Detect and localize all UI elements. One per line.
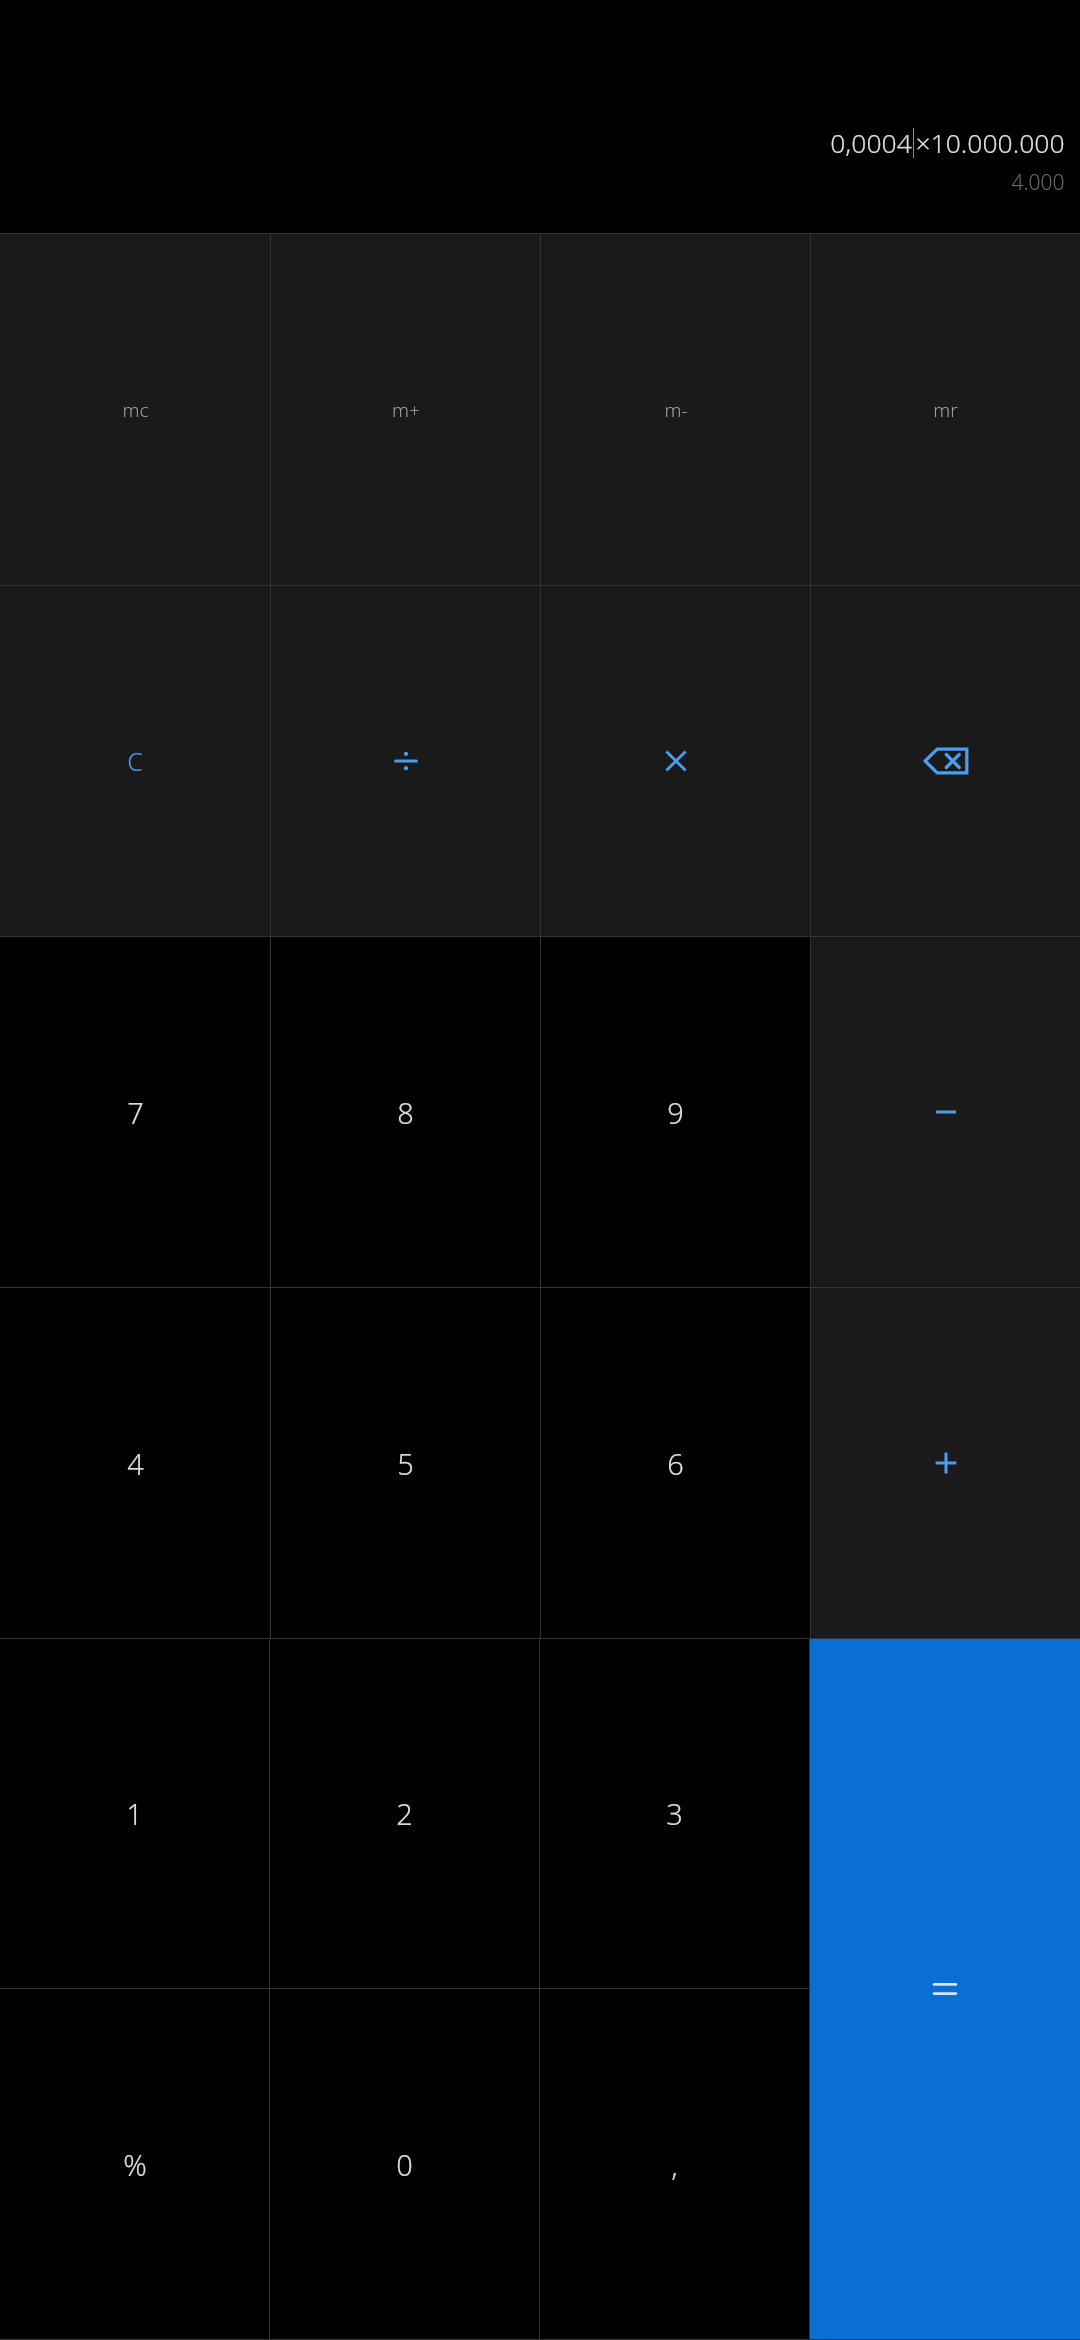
staticText: 6 [667, 1444, 684, 1483]
staticText: 8 [397, 1093, 414, 1132]
button[interactable]: 5 [271, 1288, 540, 1638]
staticText: ×10.000.000 [915, 125, 1065, 161]
button[interactable]: 6 [541, 1288, 810, 1638]
staticText: mr [933, 397, 958, 423]
staticText: 5 [397, 1444, 414, 1483]
button[interactable]: 1 [0, 1639, 269, 1988]
button[interactable]: Multiply [541, 586, 810, 936]
staticText: 2 [396, 1794, 413, 1833]
staticText: % [123, 2145, 147, 2184]
button[interactable]: Divide [271, 586, 540, 936]
staticText: 1 [126, 1794, 143, 1833]
button[interactable]: 3 [540, 1639, 809, 1988]
staticText: m- [664, 397, 688, 423]
button[interactable]: 2 [270, 1639, 539, 1988]
staticText: 4.000 [1011, 168, 1065, 197]
staticText: 4 [127, 1444, 144, 1483]
staticText: 3 [666, 1794, 683, 1833]
button[interactable]: 9 [541, 937, 810, 1287]
staticText: 7 [127, 1093, 144, 1132]
button[interactable]: 7 [0, 937, 270, 1287]
button[interactable]: 0 [270, 1989, 539, 2339]
button[interactable]: 8 [271, 937, 540, 1287]
staticText: mc [122, 397, 149, 423]
staticText: , [671, 2145, 678, 2184]
staticText: 0,0004 [830, 125, 912, 161]
button[interactable]: % [0, 1989, 269, 2339]
button[interactable]: C [0, 586, 270, 936]
staticText: m+ [392, 397, 420, 423]
staticText: C [127, 744, 143, 778]
button[interactable]: Equals [810, 1639, 1080, 2339]
button[interactable]: 4 [0, 1288, 270, 1638]
button[interactable]: Minus [811, 937, 1080, 1287]
button[interactable]: Plus [811, 1288, 1080, 1638]
staticText: 9 [667, 1093, 684, 1132]
staticText: 0 [396, 2145, 413, 2184]
button[interactable]: Backspace [811, 586, 1080, 936]
